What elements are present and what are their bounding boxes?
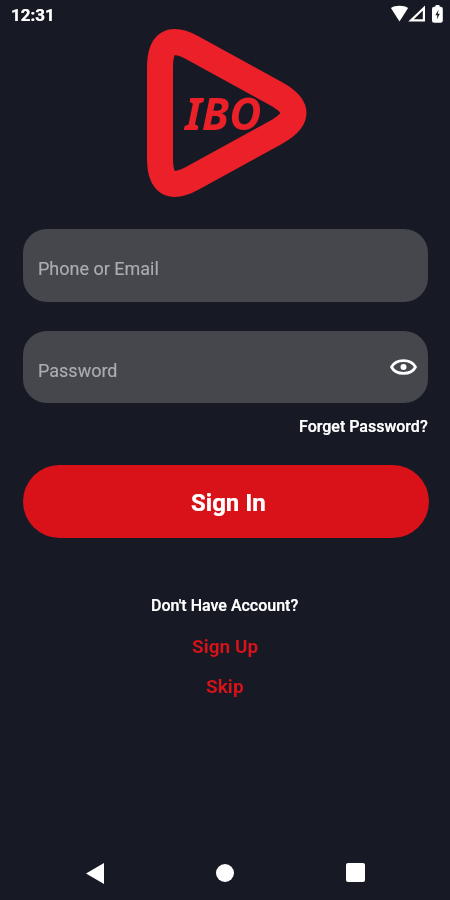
button[interactable]: Skip — [198, 672, 252, 700]
button[interactable]: Recents — [331, 848, 379, 896]
button[interactable]: Sign In — [23, 465, 429, 538]
button[interactable]: Password — [23, 331, 428, 403]
button[interactable]: Show password — [383, 347, 423, 387]
button[interactable]: Back — [71, 849, 119, 897]
staticText: Sign In — [191, 489, 266, 517]
staticText: Don't Have Account? — [151, 596, 299, 615]
staticText: Password — [38, 360, 118, 381]
staticText: IBO — [185, 83, 262, 143]
staticText: 12:31 — [11, 5, 55, 25]
staticText: Skip — [206, 675, 244, 697]
button[interactable]: Home — [201, 849, 249, 897]
staticText: Phone or Email — [38, 258, 159, 279]
staticText: Sign Up — [192, 635, 259, 657]
button[interactable]: Sign Up — [184, 632, 267, 660]
button[interactable]: Forget Password? — [295, 414, 432, 439]
button[interactable]: Phone or Email — [23, 229, 428, 302]
staticText: Forget Password? — [299, 417, 428, 436]
